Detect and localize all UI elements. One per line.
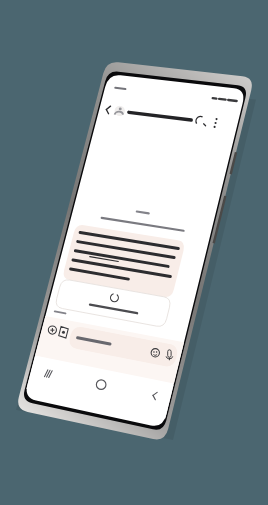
button[interactable]: Phone showing SMS conversation <box>0 0 268 505</box>
